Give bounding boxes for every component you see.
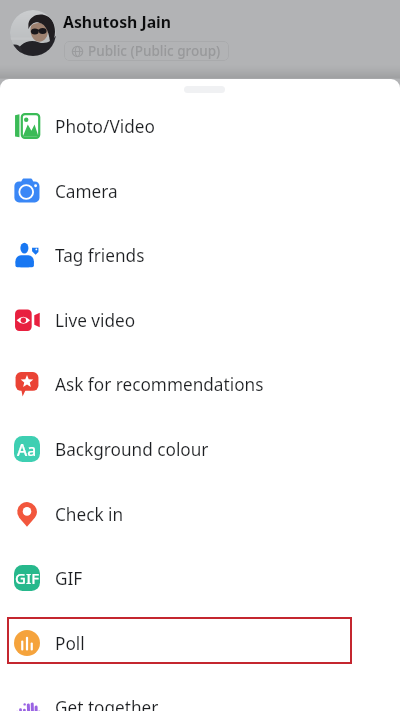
staticText: Camera — [55, 180, 118, 203]
button[interactable]: Public (Public group) — [72, 41, 221, 61]
staticText: Aa — [17, 439, 37, 460]
staticText: Tag friends — [55, 244, 145, 267]
staticText: Ask for recommendations — [55, 373, 264, 396]
staticText: Public (Public group) — [88, 42, 221, 60]
staticText: GIF — [15, 568, 40, 588]
button[interactable]: Get together — [0, 674, 400, 711]
button[interactable]: Poll — [0, 610, 400, 675]
staticText: Get together — [55, 696, 159, 711]
staticText: Ashutosh Jain — [63, 11, 172, 33]
button[interactable]: Live video — [0, 287, 400, 352]
button[interactable]: GIF — [0, 545, 400, 610]
button[interactable]: Check in — [0, 481, 400, 546]
staticText: Background colour — [55, 438, 209, 461]
button[interactable]: Aa — [0, 416, 400, 481]
button[interactable]: Ask for recommendations — [0, 351, 400, 416]
button[interactable]: Camera — [0, 158, 400, 223]
staticText: GIF — [55, 567, 83, 590]
staticText: Photo/Video — [55, 115, 155, 138]
button[interactable]: Tag friends — [0, 222, 400, 287]
button[interactable]: Profile photo — [10, 10, 56, 56]
staticText: Live video — [55, 309, 136, 332]
button[interactable]: Photo/Video — [0, 93, 400, 158]
staticText: Poll — [55, 632, 85, 655]
staticText: Check in — [55, 503, 124, 526]
